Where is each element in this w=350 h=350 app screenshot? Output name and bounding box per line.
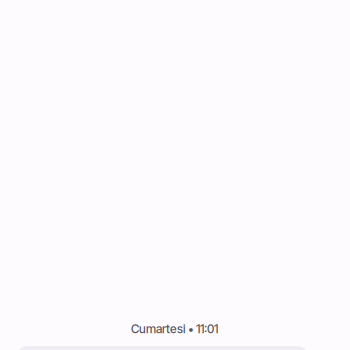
staticText: Cumartesi • 11:01 bbox=[131, 321, 218, 336]
